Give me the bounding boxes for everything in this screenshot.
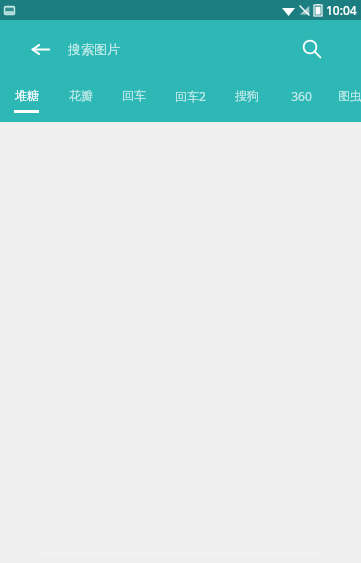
button[interactable]: 花瓣 <box>55 78 107 122</box>
staticText: 图虫 <box>338 88 361 103</box>
button[interactable]: 回车 <box>108 78 160 122</box>
button[interactable]: 搜狗 <box>221 78 273 122</box>
button[interactable]: 图虫 <box>324 78 361 122</box>
button[interactable]: 搜索图片 <box>68 29 307 69</box>
staticText: 堆糖 <box>15 88 39 103</box>
button[interactable]: 堆糖 <box>0 78 52 122</box>
staticText: 360 <box>291 88 312 104</box>
staticText: 搜索图片 <box>68 41 120 57</box>
staticText: 回车 <box>122 88 146 103</box>
staticText: 花瓣 <box>69 88 93 103</box>
staticText: 10:04 <box>326 2 357 18</box>
staticText: 搜狗 <box>235 88 259 103</box>
button[interactable]: Back <box>18 27 62 71</box>
button[interactable]: Search <box>292 29 332 69</box>
button[interactable]: 回车2 <box>164 78 216 122</box>
staticText: 回车2 <box>175 88 206 104</box>
button[interactable]: 360 <box>275 78 327 122</box>
